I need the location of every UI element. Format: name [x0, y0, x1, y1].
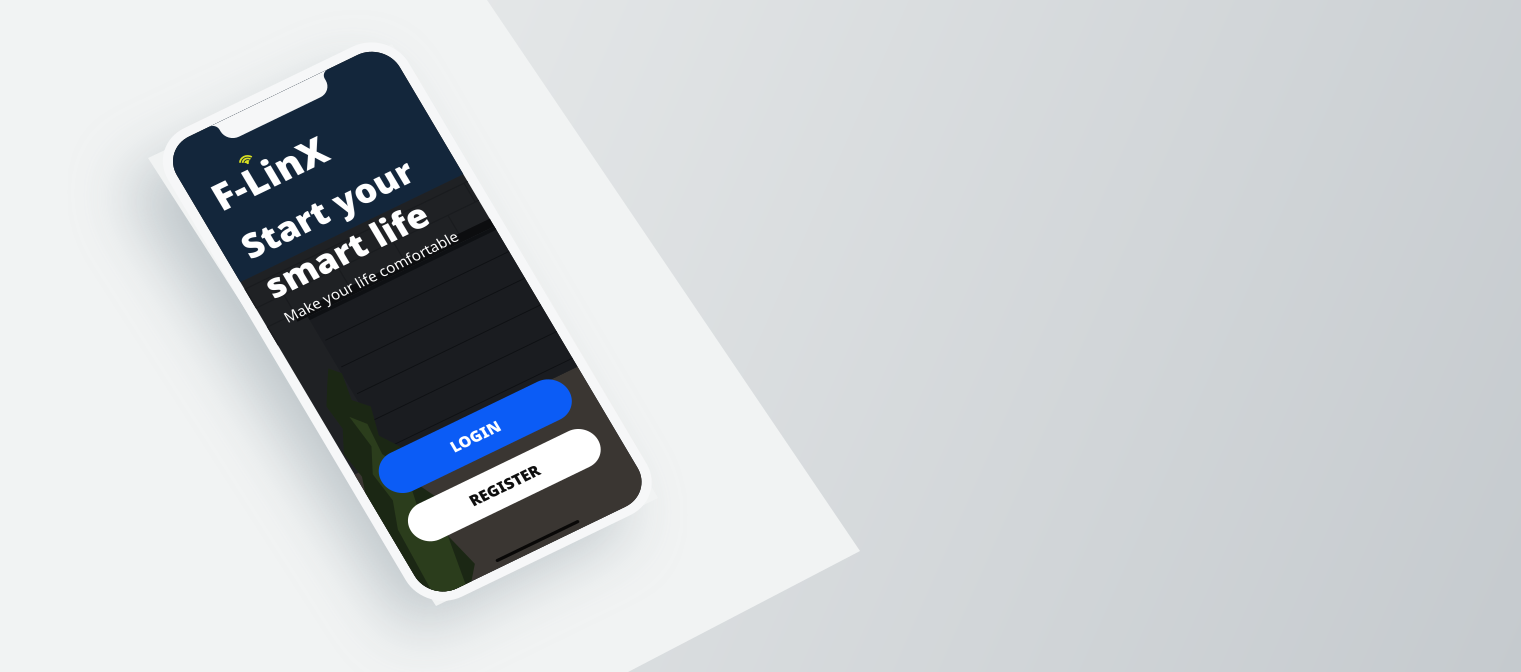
- staticText: F-LinX: [45, 81, 230, 159]
- staticText: Start your: [45, 173, 326, 244]
- staticText: smart life: [45, 244, 312, 314]
- staticText: Make your life comfortable: [45, 319, 335, 349]
